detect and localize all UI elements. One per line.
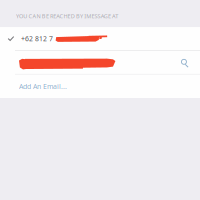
staticText: +62 812 7: [21, 34, 53, 43]
button[interactable]: [0, 51, 200, 74]
button[interactable]: +62 812 7: [0, 27, 200, 50]
staticText: YOU CAN BE REACHED BY IMESSAGE AT: [16, 12, 118, 20]
button[interactable]: Add An Email...: [0, 75, 200, 98]
staticText: Add An Email...: [19, 82, 67, 91]
